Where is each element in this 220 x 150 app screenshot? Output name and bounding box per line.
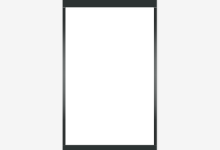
button[interactable]: Phone screen preview: [0, 0, 220, 150]
